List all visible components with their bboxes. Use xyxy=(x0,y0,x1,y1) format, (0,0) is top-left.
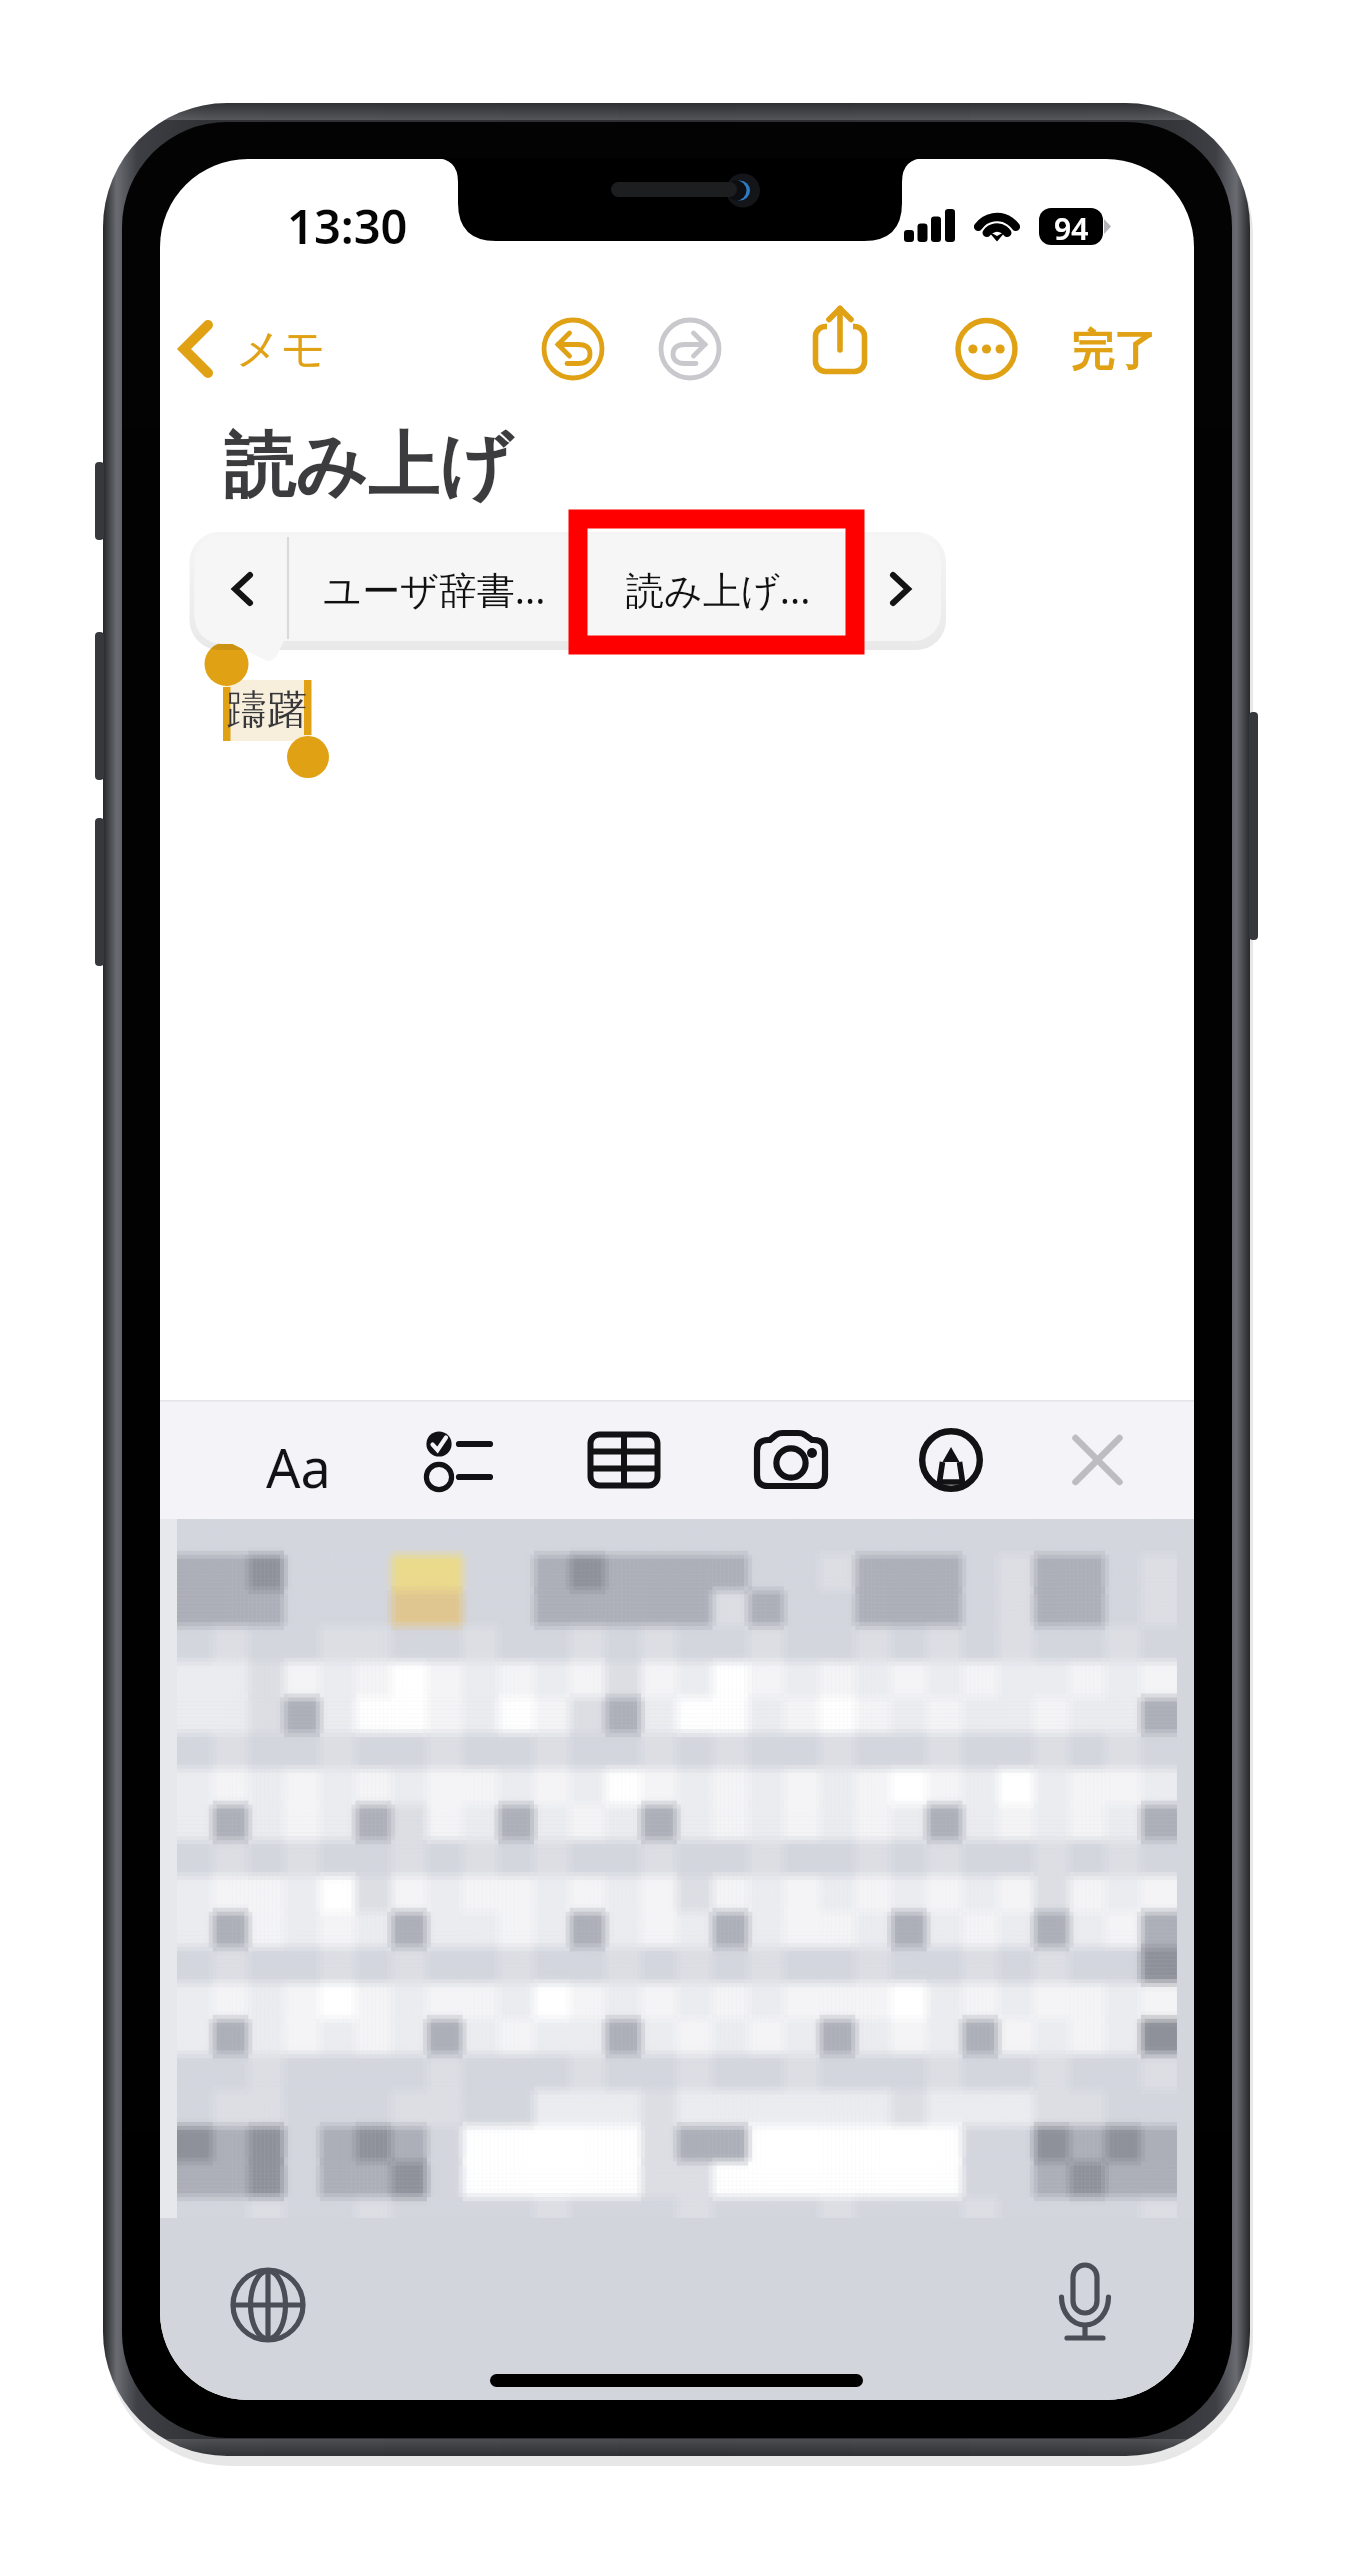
button[interactable]: Previous suggestion xyxy=(198,535,290,645)
staticText: 躊躇 xyxy=(227,684,307,734)
staticText: 13:30 xyxy=(287,194,408,258)
button[interactable]: Undo xyxy=(533,310,615,392)
button[interactable]: More options xyxy=(946,310,1028,392)
button[interactable]: Switch keyboard xyxy=(213,2250,323,2360)
staticText: ら xyxy=(224,604,265,654)
button[interactable]: Checklist xyxy=(406,1411,506,1511)
button[interactable]: Table xyxy=(575,1411,675,1511)
button[interactable]: Close keyboard toolbar xyxy=(1049,1411,1149,1511)
staticText: Aa xyxy=(266,1430,331,1504)
staticText: メモ xyxy=(236,322,327,377)
staticText: 読み上げ xyxy=(224,422,512,511)
staticText: ユーザ辞書... xyxy=(323,563,546,615)
button[interactable]: Camera xyxy=(740,1411,840,1511)
button[interactable] xyxy=(578,535,878,645)
button[interactable]: Redo xyxy=(650,310,732,392)
button[interactable]: Next suggestion xyxy=(878,535,938,645)
button[interactable]: Dictation xyxy=(1029,2250,1139,2360)
staticText: 完了 xyxy=(1071,324,1157,378)
button[interactable]: Format text xyxy=(247,1411,347,1511)
button[interactable]: Share xyxy=(800,305,882,397)
button[interactable] xyxy=(170,300,350,400)
staticText: 94 xyxy=(1054,208,1089,245)
staticText: 読み上げ... xyxy=(626,563,811,615)
button[interactable]: Markup xyxy=(900,1411,1000,1511)
button[interactable] xyxy=(1040,300,1170,400)
button[interactable] xyxy=(292,535,578,645)
